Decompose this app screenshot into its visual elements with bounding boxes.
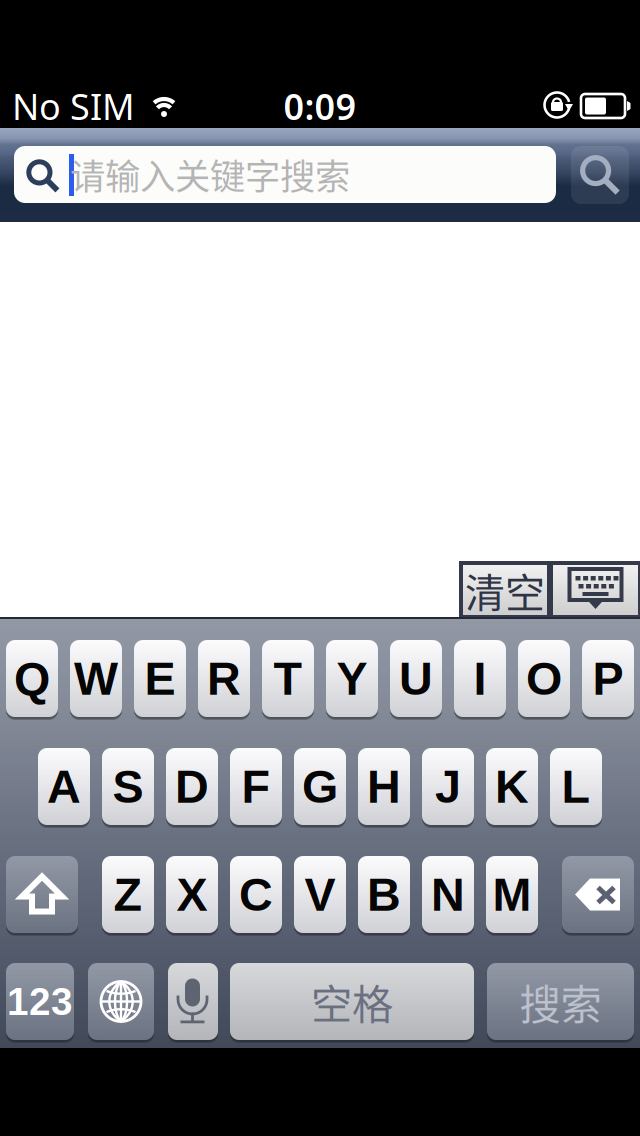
staticText: D [175,760,209,812]
button[interactable]: X [166,856,218,933]
staticText: 请输入关键字搜索 [70,148,350,200]
staticText: B [367,868,401,920]
button[interactable]: U [390,640,442,717]
staticText: C [239,868,273,920]
staticText: Z [113,868,142,920]
button[interactable]: 清空 [461,563,549,617]
button[interactable]: I [454,640,506,717]
staticText: P [592,652,623,704]
staticText: O [526,652,562,704]
staticText: I [473,652,486,704]
button[interactable]: F [230,748,282,825]
button[interactable]: 空格 [230,963,474,1040]
button[interactable]: G [294,748,346,825]
button[interactable]: R [198,640,250,717]
button[interactable]: Next keyboard [88,963,154,1040]
staticText: G [302,760,338,812]
button[interactable]: L [550,748,602,825]
button[interactable]: Y [326,640,378,717]
staticText: 搜索 [519,972,601,1031]
staticText: 空格 [311,972,393,1031]
staticText: X [176,868,207,920]
button[interactable]: H [358,748,410,825]
button[interactable]: 请输入关键字搜索 [14,146,556,203]
staticText: U [399,652,433,704]
button[interactable]: J [422,748,474,825]
staticText: N [431,868,465,920]
staticText: F [241,760,270,812]
staticText: T [273,652,302,704]
staticText: No SIM [12,82,135,130]
staticText: K [495,760,529,812]
staticText: W [74,652,118,704]
staticText: H [367,760,401,812]
staticText: E [144,652,175,704]
button[interactable]: N [422,856,474,933]
staticText: L [561,760,590,812]
button[interactable]: K [486,748,538,825]
button[interactable]: M [486,856,538,933]
staticText: Q [14,652,50,704]
staticText: A [47,760,81,812]
staticText: J [435,760,461,812]
button[interactable]: A [38,748,90,825]
button[interactable]: B [358,856,410,933]
staticText: Y [336,652,367,704]
staticText: 123 [7,980,73,1023]
button[interactable]: O [518,640,570,717]
button[interactable]: W [70,640,122,717]
button[interactable]: V [294,856,346,933]
button[interactable]: 123 [6,963,74,1040]
staticText: 清空 [465,561,545,619]
button[interactable]: P [582,640,634,717]
staticText: R [207,652,241,704]
button[interactable]: D [166,748,218,825]
button[interactable]: Hide keyboard [551,563,640,617]
button[interactable]: Dictation [168,963,218,1040]
button[interactable]: C [230,856,282,933]
button[interactable]: Search [571,146,629,204]
button[interactable]: T [262,640,314,717]
button[interactable]: Shift [6,856,78,933]
button[interactable]: S [102,748,154,825]
button[interactable]: Q [6,640,58,717]
staticText: 0:09 [283,82,356,130]
staticText: M [492,868,531,920]
button[interactable]: Z [102,856,154,933]
staticText: S [112,760,143,812]
button[interactable]: 搜索 [487,963,634,1040]
button[interactable]: E [134,640,186,717]
button[interactable]: Delete [562,856,634,933]
staticText: V [304,868,335,920]
